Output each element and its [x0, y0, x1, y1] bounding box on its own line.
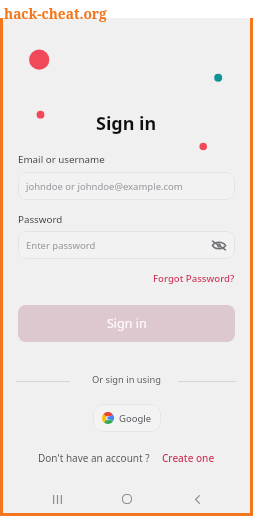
staticText: Don't have an account ?: [38, 451, 150, 465]
button[interactable]: Home: [115, 487, 139, 511]
staticText: Or sign in using: [92, 373, 161, 386]
button[interactable]: Google: [93, 404, 161, 432]
button[interactable]: Sign in: [18, 305, 235, 342]
button[interactable]: Forgot Password?: [153, 272, 235, 285]
button[interactable]: Recent apps: [45, 487, 69, 511]
staticText: johndoe or johndoe@example.com: [26, 180, 183, 193]
staticText: Sign in: [96, 111, 157, 136]
staticText: Enter password: [26, 239, 96, 252]
button[interactable]: Enter password: [18, 231, 235, 259]
staticText: Google: [119, 412, 152, 425]
staticText: Password: [18, 213, 63, 226]
staticText: Email or username: [18, 153, 105, 166]
staticText: hack-cheat.org: [4, 4, 107, 23]
staticText: Sign in: [107, 315, 147, 332]
button[interactable]: johndoe or johndoe@example.com: [18, 172, 235, 200]
button[interactable]: Back: [185, 487, 209, 511]
button[interactable]: Show password: [210, 236, 228, 254]
button[interactable]: Create one: [162, 451, 215, 465]
